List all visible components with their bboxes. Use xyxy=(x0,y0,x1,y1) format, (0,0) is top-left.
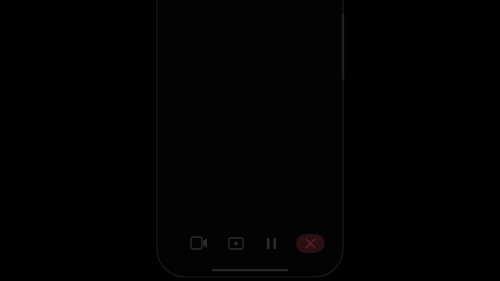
button[interactable]: Pause xyxy=(256,230,286,256)
button[interactable]: Turn camera off xyxy=(184,230,214,256)
button[interactable]: Share screen xyxy=(221,230,251,256)
button[interactable]: End call xyxy=(295,233,325,253)
